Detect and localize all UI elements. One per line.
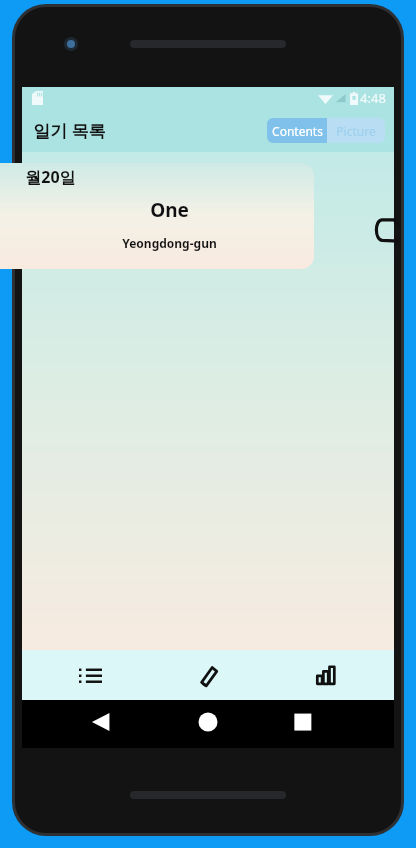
staticText: Contents	[272, 123, 323, 139]
button[interactable]: One	[0, 163, 314, 269]
button[interactable]: List	[40, 650, 140, 700]
staticText: 4:48	[360, 89, 386, 107]
button[interactable]: Contents	[267, 118, 327, 143]
button[interactable]: Picture	[327, 118, 385, 143]
staticText: Picture	[336, 123, 376, 139]
button[interactable]: Stats	[276, 650, 376, 700]
staticText: Yeongdong-gun	[122, 235, 217, 251]
staticText: BANDICAM	[161, 0, 267, 22]
staticText: www.	[113, 0, 161, 22]
staticText: .com	[267, 2, 303, 22]
staticText: 일기 목록	[33, 119, 106, 142]
staticText: 월20일	[25, 166, 76, 188]
button[interactable]: Write	[158, 650, 258, 700]
staticText: One	[150, 197, 189, 223]
